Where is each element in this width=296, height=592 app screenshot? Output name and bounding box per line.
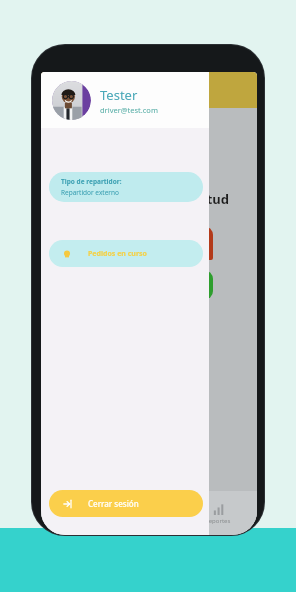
button[interactable]: Tester xyxy=(41,72,209,128)
staticText: Pedidos en curso xyxy=(88,249,147,259)
button[interactable]: Pedidos en curso xyxy=(49,240,203,267)
staticText: Solicitud xyxy=(173,190,229,208)
staticText: Tipo de repartidor: xyxy=(61,177,122,186)
staticText: driver@test.com xyxy=(100,105,158,115)
button[interactable]: Cerrar sesión xyxy=(49,490,203,517)
staticText: Repartidor externo xyxy=(61,188,119,197)
staticText: Cerrar sesión xyxy=(88,498,139,509)
staticText: Reportes xyxy=(205,517,231,525)
button[interactable]: Tipo de repartidor: xyxy=(49,172,203,202)
other: Rechazados xyxy=(186,238,197,249)
button[interactable]: 0 xyxy=(169,270,213,300)
button[interactable]: Reportes xyxy=(179,491,257,535)
button[interactable]: Rechazados xyxy=(169,226,213,260)
other: Cerrar sesión xyxy=(62,499,72,509)
staticText: Tester xyxy=(100,86,138,104)
